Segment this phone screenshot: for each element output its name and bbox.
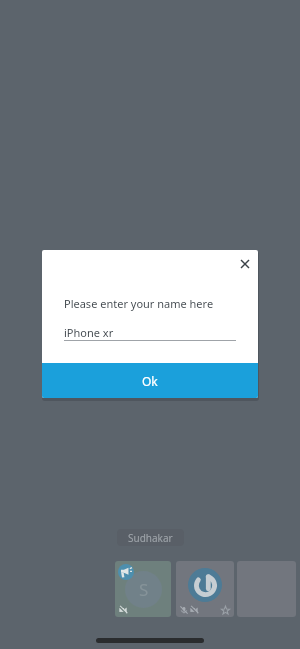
button[interactable]: iPhone xr <box>64 325 236 341</box>
button[interactable]: Sudhakar <box>117 529 184 546</box>
other: Favourite <box>221 606 230 615</box>
staticText: iPhone xr <box>64 325 114 340</box>
button[interactable]: S <box>115 561 171 617</box>
other: Mic off <box>180 606 188 614</box>
button[interactable]: Close <box>233 252 257 276</box>
other: Camera off <box>119 606 127 614</box>
staticText: Sudhakar <box>128 531 173 545</box>
other: Camera off <box>190 606 198 614</box>
button[interactable]: Ok <box>42 363 258 398</box>
staticText: Ok <box>142 373 158 389</box>
other: Announcement <box>118 564 134 580</box>
staticText: S <box>139 578 149 601</box>
button[interactable]: Mic off <box>176 561 234 617</box>
staticText: Please enter your name here <box>64 296 214 311</box>
